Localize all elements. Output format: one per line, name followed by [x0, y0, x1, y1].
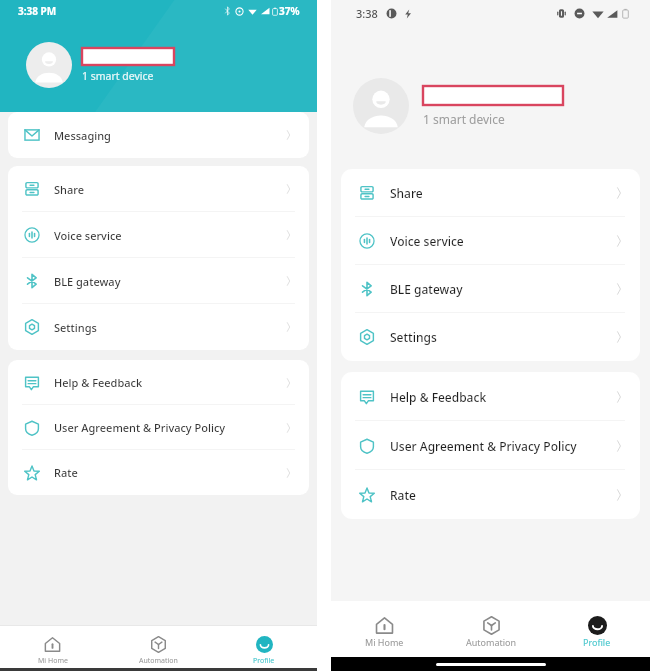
button[interactable]: BLE gateway [341, 265, 640, 313]
staticText: Messaging [54, 128, 111, 143]
button[interactable]: Settings [8, 304, 309, 350]
button[interactable]: Rate [341, 470, 640, 519]
staticText: Mi Home [365, 636, 404, 648]
button[interactable]: Help & Feedback [8, 360, 309, 405]
button[interactable]: BLE gateway [8, 258, 309, 304]
button[interactable]: Messaging [8, 112, 309, 158]
staticText: Rate [54, 465, 78, 480]
button[interactable]: Share [8, 166, 309, 212]
button[interactable]: Profile [211, 626, 317, 668]
staticText: Share [390, 185, 423, 201]
staticText: Voice service [390, 233, 464, 249]
button[interactable]: Automation [105, 626, 211, 668]
button[interactable]: Help & Feedback [341, 372, 640, 421]
button[interactable]: Rate [8, 450, 309, 495]
staticText: 3:38 [356, 6, 378, 21]
button[interactable]: User Agreement & Privacy Policy [8, 405, 309, 450]
staticText: Profile [253, 656, 275, 666]
staticText: Help & Feedback [390, 389, 487, 405]
staticText: User Agreement & Privacy Policy [390, 438, 577, 454]
button[interactable]: Profile [544, 601, 650, 657]
staticText: Automation [139, 656, 178, 666]
staticText: 37% [279, 4, 300, 18]
staticText: Automation [466, 636, 517, 648]
staticText: Settings [390, 329, 437, 345]
staticText: Help & Feedback [54, 375, 143, 390]
button[interactable]: Share [341, 169, 640, 217]
staticText: Settings [54, 320, 97, 335]
staticText: BLE gateway [390, 281, 463, 297]
staticText: 1 smart device [82, 69, 154, 83]
staticText: BLE gateway [54, 274, 121, 289]
staticText: Profile [583, 636, 611, 648]
staticText: Mi Home [38, 656, 68, 666]
staticText: Rate [390, 487, 416, 503]
button[interactable]: Automation [438, 601, 544, 657]
staticText: 3:38 PM [18, 4, 57, 18]
button[interactable]: Voice service [8, 212, 309, 258]
staticText: User Agreement & Privacy Policy [54, 420, 226, 435]
staticText: Share [54, 182, 84, 197]
button[interactable]: Mi Home [331, 601, 438, 657]
button[interactable]: Voice service [341, 217, 640, 265]
staticText: Voice service [54, 228, 122, 243]
button[interactable]: User Agreement & Privacy Policy [341, 421, 640, 470]
button[interactable]: Settings [341, 313, 640, 361]
button[interactable]: Mi Home [0, 626, 105, 668]
staticText: 1 smart device [423, 111, 505, 127]
